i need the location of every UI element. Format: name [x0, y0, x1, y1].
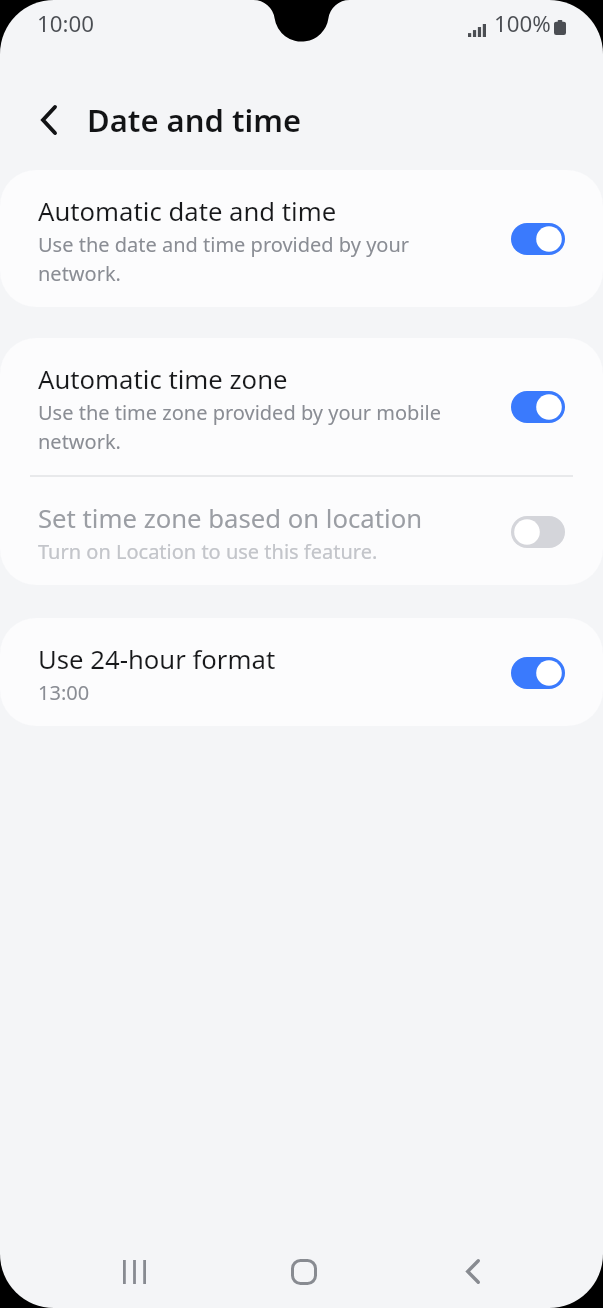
button[interactable]: Automatic time zone: [0, 338, 603, 475]
staticText: 100%: [494, 8, 551, 38]
staticText: Use the date and time provided by your n…: [38, 229, 491, 287]
staticText: Automatic time zone: [38, 367, 288, 395]
staticText: Automatic date and time: [38, 199, 337, 227]
staticText: Date and time: [87, 99, 302, 141]
staticText: Use the time zone provided by your mobil…: [38, 397, 491, 455]
button[interactable]: Back: [415, 1235, 530, 1308]
button[interactable]: Home: [246, 1235, 361, 1308]
staticText: 13:00: [38, 677, 90, 706]
button[interactable]: Use 24-hour format: [0, 618, 603, 726]
staticText: Turn on Location to use this feature.: [38, 536, 378, 565]
button[interactable]: Off: [511, 516, 565, 548]
button[interactable]: Recent apps: [77, 1235, 192, 1308]
staticText: Use 24-hour format: [38, 647, 276, 675]
button[interactable]: On: [511, 657, 565, 689]
button[interactable]: Set time zone based on location: [0, 477, 603, 585]
staticText: Set time zone based on location: [38, 506, 423, 534]
staticText: 10:00: [37, 8, 94, 38]
button[interactable]: On: [511, 223, 565, 255]
button[interactable]: On: [511, 391, 565, 423]
button[interactable]: Automatic date and time: [0, 170, 603, 307]
button[interactable]: Back: [15, 86, 83, 154]
